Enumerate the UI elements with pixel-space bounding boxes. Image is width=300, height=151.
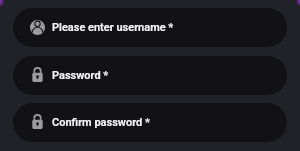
other: Account xyxy=(30,20,45,35)
button[interactable]: Account xyxy=(13,8,287,47)
staticText: Password * xyxy=(52,69,109,82)
button[interactable]: Password xyxy=(13,103,287,142)
button[interactable]: Password xyxy=(13,56,287,95)
staticText: Confirm password * xyxy=(52,116,150,129)
other: Password xyxy=(30,67,45,82)
other: Password xyxy=(30,114,45,129)
staticText: Please enter username * xyxy=(52,21,174,34)
